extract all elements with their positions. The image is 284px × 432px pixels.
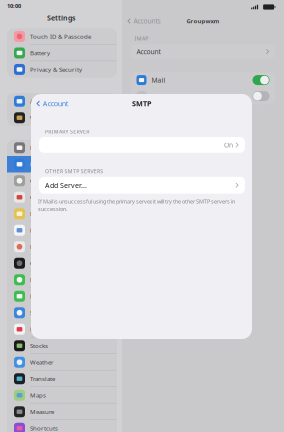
button[interactable]: Reminders [7,222,117,238]
button[interactable]: Privacy & Security [7,61,117,78]
staticText: Notes [30,210,47,218]
staticText: Accounts [133,16,160,26]
button[interactable]: Safari [7,304,117,321]
staticText: Settings [47,13,75,23]
staticText: Calendar [30,193,56,201]
button[interactable]: Photos [7,238,117,255]
staticText: Wallet [30,114,48,122]
button[interactable]: Stocks [7,337,117,354]
staticText: Stocks [30,342,48,350]
staticText: Account [43,99,69,108]
staticText: Camera [30,259,51,267]
button[interactable]: Touch ID & Passcode [7,28,117,45]
button[interactable]: Measure [7,403,117,420]
staticText: PRIMARY SERVER [45,128,89,135]
staticText: On [224,140,233,149]
button[interactable]: FaceTime [7,288,117,304]
staticText: Passwords [30,144,61,152]
button[interactable]: Battery [7,45,117,61]
staticText: Contacts [30,177,55,185]
button[interactable]: Maps [7,387,117,403]
staticText: Safari [30,309,46,317]
button[interactable]: Shortcuts [7,420,117,432]
staticText: Shortcuts [30,424,58,432]
button[interactable]: Passwords [7,139,117,156]
staticText: Photos [30,243,51,251]
button[interactable]: Contacts [7,172,117,189]
staticText: News [30,325,46,333]
staticText: Battery [30,49,50,57]
button[interactable]: Weather [7,354,117,370]
staticText: Touch ID & Passcode [30,32,91,41]
staticText: SMTP [132,99,151,108]
button[interactable]: Notes [7,205,117,222]
button[interactable]: Account [31,94,252,113]
button[interactable]: Camera [7,255,117,271]
staticText: 10:00 [7,2,21,10]
staticText: IMAP [134,35,148,42]
button[interactable]: Mail [7,156,117,172]
button[interactable]: Calendar [7,189,117,205]
staticText: Add Server... [45,180,87,190]
staticText: Reminders [30,226,62,234]
staticText: Measure [30,408,54,416]
button[interactable]: On [39,137,245,153]
staticText: App Store [30,97,58,105]
button[interactable]: Messages [7,271,117,288]
staticText: Mail [151,75,165,85]
button[interactable]: App Store [7,93,117,109]
staticText: OTHER SMTP SERVERS [45,168,103,175]
button[interactable]: Wallet [7,109,117,126]
staticText: Mail [30,160,43,168]
button[interactable]: Translate [7,370,117,387]
staticText: FaceTime [30,292,56,300]
staticText: Translate [30,375,55,383]
button[interactable]: Account [130,44,275,59]
staticText: Privacy & Security [30,65,82,74]
staticText: Weather [30,358,54,366]
staticText: Messages [30,276,58,284]
button[interactable]: Add Server... [39,177,245,194]
staticText: Account [136,47,160,56]
staticText: If Mail is unsuccessful using the primar… [38,198,235,213]
button[interactable]: News [7,321,117,337]
staticText: Maps [30,391,46,399]
staticText: Groupwxm [186,17,219,25]
button[interactable]: Accounts [122,14,284,28]
